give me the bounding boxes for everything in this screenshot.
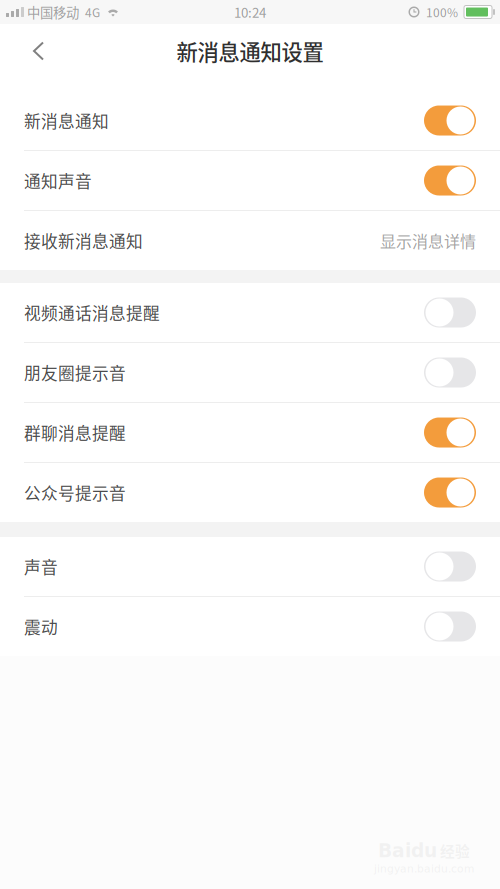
staticText: 100% <box>420 3 464 21</box>
staticText: jingyan.baidu.com <box>374 863 474 875</box>
button[interactable]: 返回 <box>0 24 69 78</box>
staticText: 新消息通知设置 <box>176 36 323 66</box>
button[interactable]: 接收新消息通知 <box>0 211 500 270</box>
staticText: 声音 <box>24 554 58 578</box>
staticText: Baidu <box>378 840 437 862</box>
staticText: 通知声音 <box>24 168 92 192</box>
staticText: 震动 <box>24 614 58 638</box>
staticText: 10:24 <box>234 2 266 22</box>
staticText: 视频通话消息提醒 <box>24 300 160 324</box>
button[interactable]: 视频通话消息提醒 <box>0 283 500 342</box>
staticText: 朋友圈提示音 <box>24 360 126 384</box>
button[interactable]: 声音 <box>0 537 500 596</box>
staticText: 新消息通知 <box>24 108 109 132</box>
button[interactable]: 通知声音 <box>0 151 500 210</box>
staticText: 中国移动 <box>24 2 79 22</box>
button[interactable]: 震动 <box>0 597 500 656</box>
staticText: 公众号提示音 <box>24 480 126 504</box>
staticText: 经验 <box>440 840 470 861</box>
button[interactable]: 公众号提示音 <box>0 463 500 522</box>
button[interactable]: 新消息通知 <box>0 91 500 150</box>
staticText: 接收新消息通知 <box>24 228 143 252</box>
staticText: 4G <box>79 3 106 21</box>
staticText: 显示消息详情 <box>380 229 476 252</box>
staticText: 群聊消息提醒 <box>24 420 126 444</box>
button[interactable]: 朋友圈提示音 <box>0 343 500 402</box>
button[interactable]: 群聊消息提醒 <box>0 403 500 462</box>
